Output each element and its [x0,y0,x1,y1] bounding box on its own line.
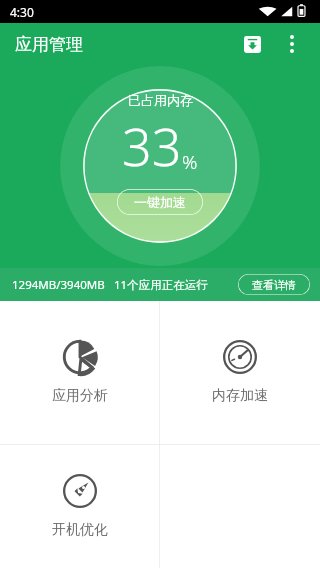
staticText: 查看详情 [252,278,296,292]
staticText: 4:30 [10,4,34,20]
button[interactable]: 一键加速 [117,189,203,215]
staticText: % [182,149,198,175]
button[interactable]: More options [272,24,312,64]
staticText: 应用管理 [15,34,83,55]
staticText: 11个应用正在运行 [114,277,208,293]
staticText: 应用分析 [52,387,108,405]
staticText: 一键加速 [134,194,186,210]
button[interactable]: 内存加速 [160,301,320,444]
staticText: 开机优化 [52,521,108,539]
button[interactable]: Downloads [232,24,272,64]
button[interactable]: 应用分析 [0,301,159,444]
button[interactable]: 开机优化 [0,445,159,568]
button[interactable]: 查看详情 [238,274,310,295]
staticText: 1294MB/3940MB [12,277,105,293]
staticText: 内存加速 [212,387,268,405]
staticText: 已占用内存 [128,92,193,108]
staticText: 33 [122,110,182,181]
